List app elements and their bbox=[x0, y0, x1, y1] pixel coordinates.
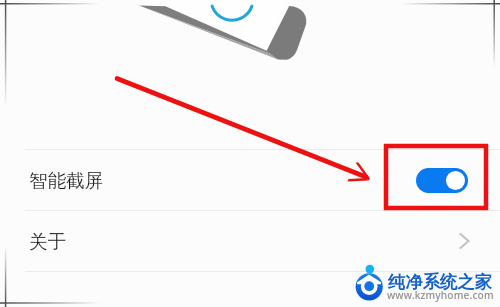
staticText: 关于 bbox=[29, 230, 66, 253]
staticText: 智能截屏 bbox=[29, 169, 103, 192]
button[interactable]: 智能截屏 bbox=[0, 150, 500, 210]
button[interactable]: 关于 bbox=[0, 211, 500, 271]
staticText: 纯净系统之家 bbox=[388, 271, 492, 293]
button[interactable]: Smart screenshot toggle bbox=[416, 168, 468, 193]
staticText: www.kzmyhome.com bbox=[387, 288, 494, 302]
